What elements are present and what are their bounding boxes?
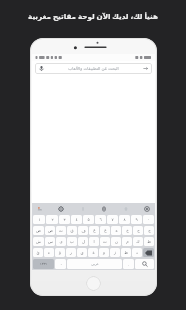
staticText: ح xyxy=(137,228,140,233)
staticText: ت xyxy=(103,239,107,244)
staticText: ث xyxy=(59,228,63,233)
button[interactable]: ٠ xyxy=(143,215,154,224)
button[interactable]: ج xyxy=(144,226,154,235)
button[interactable]: ش xyxy=(33,237,44,246)
button[interactable]: ع xyxy=(100,226,110,235)
button[interactable]: ٣ xyxy=(59,215,70,224)
button[interactable]: ؟١٢٣ xyxy=(33,259,54,269)
button[interactable]: س xyxy=(45,237,55,246)
button[interactable]: ل xyxy=(78,237,88,246)
staticText: ل xyxy=(82,239,85,244)
staticText: غ xyxy=(93,228,96,233)
button[interactable]: ا xyxy=(89,237,99,246)
button[interactable]: ت xyxy=(100,237,110,246)
button[interactable]: Clipboard xyxy=(100,205,108,213)
staticText: ة xyxy=(92,250,95,255)
button[interactable]: ف xyxy=(78,226,88,235)
staticText: ش xyxy=(36,239,41,244)
button[interactable]: ، xyxy=(55,259,66,269)
button[interactable]: ق xyxy=(67,226,77,235)
staticText: ٠ xyxy=(147,217,150,222)
button[interactable]: Stickers xyxy=(122,205,130,213)
button[interactable]: Keyboard logo xyxy=(36,205,44,213)
button[interactable]: ك xyxy=(133,237,143,246)
button[interactable]: Settings xyxy=(57,205,65,213)
staticText: عربي xyxy=(91,262,99,266)
staticText: ط xyxy=(147,239,151,244)
button[interactable]: Back xyxy=(142,65,149,72)
button[interactable]: Space xyxy=(67,259,122,269)
button[interactable]: Search xyxy=(135,259,154,269)
button[interactable]: ظ xyxy=(121,248,131,257)
staticText: البحث عن التطبيقات والألعاب xyxy=(68,66,119,72)
button[interactable]: ٦ xyxy=(95,215,106,224)
button[interactable]: ي xyxy=(56,237,66,246)
button[interactable]: ب xyxy=(67,237,77,246)
staticText: ١ xyxy=(38,217,41,222)
button[interactable]: ر xyxy=(66,248,76,257)
button[interactable]: ٤ xyxy=(71,215,82,224)
button[interactable]: و xyxy=(99,248,109,257)
button[interactable]: ئ xyxy=(33,248,43,257)
button[interactable]: Themes xyxy=(79,205,87,213)
button[interactable]: ٥ xyxy=(83,215,94,224)
button[interactable]: ن xyxy=(111,237,121,246)
button[interactable]: ة xyxy=(88,248,98,257)
staticText: ٣ xyxy=(63,217,66,222)
staticText: ٦ xyxy=(99,217,102,222)
staticText: ، xyxy=(60,262,62,266)
button[interactable]: ص xyxy=(45,226,55,235)
button[interactable]: ٩ xyxy=(131,215,142,224)
button[interactable]: ٢ xyxy=(46,215,58,224)
staticText: ٢ xyxy=(51,217,54,222)
button[interactable]: ه xyxy=(111,226,121,235)
staticText: خ xyxy=(126,228,129,233)
staticText: ب xyxy=(70,239,74,244)
button[interactable]: Home xyxy=(86,276,101,291)
staticText: ؤ xyxy=(59,250,61,255)
staticText: ٨ xyxy=(123,217,126,222)
button[interactable]: Backspace xyxy=(143,248,154,257)
button[interactable]: ء xyxy=(44,248,54,257)
staticText: ع xyxy=(104,228,107,233)
staticText: ج xyxy=(148,228,151,233)
staticText: ظ xyxy=(124,250,128,255)
button[interactable]: ط xyxy=(144,237,154,246)
staticText: هنيأ لك، لديك الآن لوحة مفاتيح مغربية xyxy=(28,11,158,21)
staticText: س xyxy=(48,239,53,244)
button[interactable]: د xyxy=(132,248,142,257)
staticText: ص xyxy=(48,228,53,233)
staticText: ض xyxy=(36,228,41,233)
button[interactable]: ؤ xyxy=(55,248,65,257)
staticText: ن xyxy=(115,239,118,244)
staticText: ٩ xyxy=(135,217,138,222)
button[interactable]: ث xyxy=(56,226,66,235)
staticText: ق xyxy=(70,228,74,233)
button[interactable]: More xyxy=(143,205,151,213)
button[interactable]: خ xyxy=(122,226,132,235)
staticText: ؟١٢٣ xyxy=(40,262,47,266)
staticText: ر xyxy=(70,250,72,255)
staticText: . xyxy=(128,262,129,267)
staticText: ف xyxy=(81,228,86,233)
staticText: ٧ xyxy=(111,217,114,222)
button[interactable]: ى xyxy=(77,248,87,257)
button[interactable]: ض xyxy=(33,226,44,235)
staticText: ا xyxy=(93,239,95,244)
staticText: و xyxy=(103,250,105,255)
staticText: م xyxy=(126,239,129,244)
button[interactable]: ٨ xyxy=(119,215,130,224)
staticText: ى xyxy=(80,250,84,255)
button[interactable]: ز xyxy=(110,248,120,257)
staticText: ي xyxy=(59,239,63,244)
staticText: ز xyxy=(114,250,116,255)
button[interactable]: م xyxy=(122,237,132,246)
button[interactable]: Voice search xyxy=(38,65,45,72)
staticText: ء xyxy=(48,250,50,255)
button[interactable]: ٧ xyxy=(107,215,118,224)
button[interactable]: . xyxy=(123,259,134,269)
button[interactable]: Voice search xyxy=(35,63,152,74)
button[interactable]: غ xyxy=(89,226,99,235)
button[interactable]: ١ xyxy=(33,215,45,224)
button[interactable]: ح xyxy=(133,226,143,235)
